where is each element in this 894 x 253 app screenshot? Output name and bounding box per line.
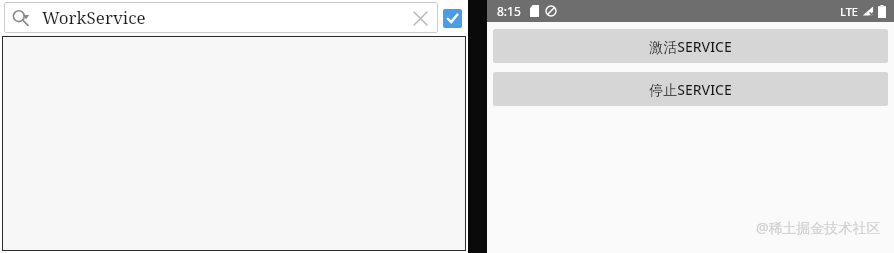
staticText: 停止SERVICE [649, 80, 732, 99]
button[interactable]: 激活SERVICE [493, 29, 888, 63]
staticText: 激活SERVICE [649, 37, 732, 56]
staticText: @稀土掘金技术社区 [756, 218, 881, 237]
button[interactable]: 停止SERVICE [493, 72, 888, 106]
button[interactable]: Toggle option [443, 9, 462, 28]
button[interactable]: WorkService [4, 2, 438, 33]
button[interactable]: Clear search [410, 8, 430, 28]
staticText: LTE [840, 4, 858, 19]
staticText: WorkService [42, 6, 146, 29]
staticText: 8:15 [497, 3, 521, 19]
